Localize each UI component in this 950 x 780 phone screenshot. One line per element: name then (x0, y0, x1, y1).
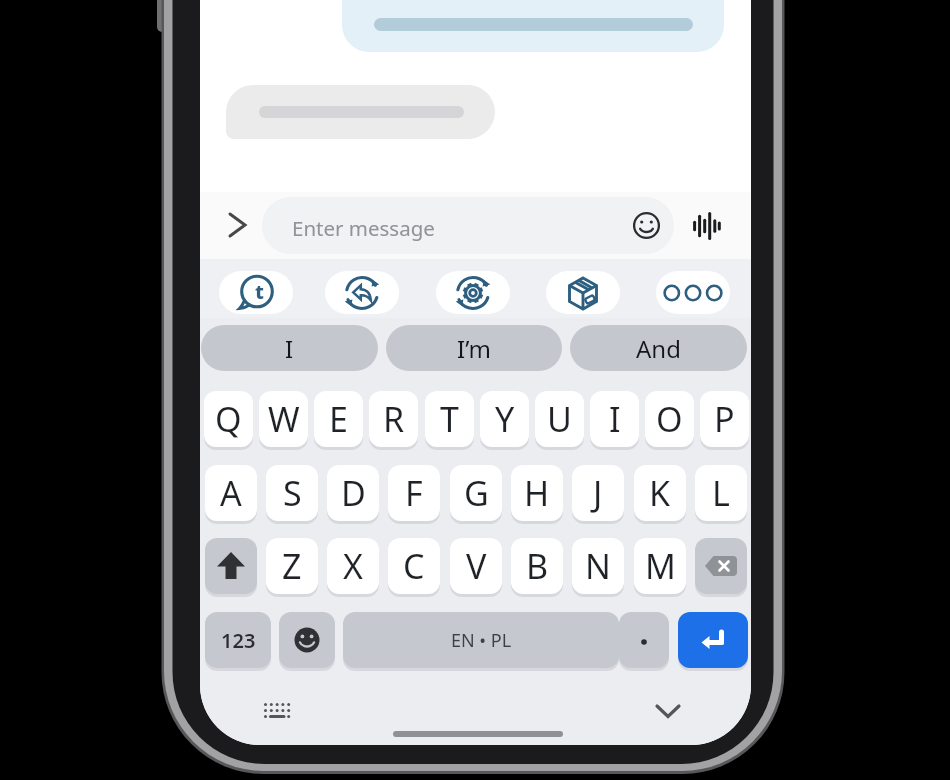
button[interactable]: T (425, 391, 474, 447)
button[interactable]: I’m (386, 325, 562, 371)
button[interactable] (695, 538, 747, 594)
button[interactable]: EN • PL (343, 612, 619, 668)
staticText: V (466, 543, 487, 589)
button[interactable] (222, 208, 250, 242)
button[interactable] (546, 271, 620, 314)
button[interactable]: t (219, 271, 293, 314)
button[interactable]: F (388, 465, 440, 521)
button[interactable]: Z (266, 538, 318, 594)
button[interactable] (436, 271, 510, 314)
button[interactable]: O (645, 391, 694, 447)
staticText: O (656, 396, 683, 442)
button[interactable]: S (266, 465, 318, 521)
staticText: J (593, 470, 603, 516)
button[interactable]: P (700, 391, 749, 447)
staticText: G (464, 470, 489, 516)
button[interactable]: N (572, 538, 624, 594)
staticText: X (343, 543, 363, 589)
button[interactable]: Q (204, 391, 253, 447)
button[interactable]: Y (480, 391, 529, 447)
button[interactable]: H (511, 465, 563, 521)
button[interactable]: I (590, 391, 639, 447)
staticText: P (714, 396, 735, 442)
button[interactable]: C (388, 538, 440, 594)
button[interactable]: X (327, 538, 379, 594)
button[interactable]: I (201, 325, 378, 371)
staticText: C (403, 543, 425, 589)
button[interactable]: B (511, 538, 563, 594)
staticText: I (609, 396, 621, 442)
staticText: t (255, 278, 264, 305)
staticText: Z (282, 543, 302, 589)
button[interactable]: M (634, 538, 686, 594)
staticText: K (649, 470, 671, 516)
button[interactable]: V (450, 538, 502, 594)
button[interactable]: K (634, 465, 686, 521)
staticText: EN • PL (451, 628, 512, 653)
button[interactable]: G (450, 465, 502, 521)
button[interactable]: J (572, 465, 624, 521)
staticText: And (636, 332, 681, 365)
staticText: N (585, 543, 611, 589)
staticText: U (547, 396, 572, 442)
button[interactable] (619, 612, 669, 668)
button[interactable] (656, 271, 730, 314)
staticText: S (283, 470, 302, 516)
staticText: W (268, 396, 300, 442)
staticText: I (285, 332, 294, 365)
staticText: H (524, 470, 550, 516)
staticText: E (329, 396, 348, 442)
staticText: Y (495, 396, 515, 442)
button[interactable] (263, 701, 293, 721)
button[interactable]: 123 (205, 612, 271, 668)
staticText: L (712, 470, 730, 516)
button[interactable] (678, 612, 748, 668)
button[interactable]: E (314, 391, 363, 447)
staticText: D (341, 470, 366, 516)
staticText: F (405, 470, 423, 516)
button[interactable]: R (369, 391, 418, 447)
staticText: M (645, 543, 676, 589)
button[interactable]: A (205, 465, 257, 521)
button[interactable]: And (570, 325, 747, 371)
staticText: 123 (221, 627, 256, 654)
staticText: I’m (457, 332, 492, 365)
button[interactable]: D (327, 465, 379, 521)
button[interactable] (262, 197, 674, 254)
button[interactable] (279, 612, 335, 668)
button[interactable] (654, 702, 682, 720)
button[interactable]: W (259, 391, 308, 447)
staticText: A (220, 470, 242, 516)
button[interactable]: L (695, 465, 747, 521)
staticText: T (440, 396, 459, 442)
button[interactable] (325, 271, 399, 314)
button[interactable] (205, 538, 257, 594)
button[interactable]: U (535, 391, 584, 447)
staticText: R (383, 396, 405, 442)
button[interactable] (692, 210, 726, 242)
staticText: Enter message (292, 214, 435, 242)
staticText: Q (215, 396, 242, 442)
button[interactable] (632, 211, 661, 240)
staticText: B (526, 543, 549, 589)
